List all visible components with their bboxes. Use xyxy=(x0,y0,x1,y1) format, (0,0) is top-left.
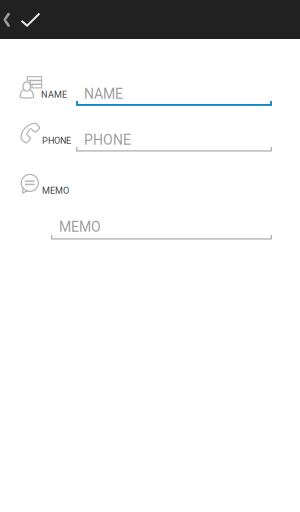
staticText: PHONE xyxy=(84,132,131,148)
staticText: MEMO xyxy=(59,219,101,235)
button[interactable]: NAME xyxy=(76,84,273,108)
staticText: MEMO xyxy=(42,185,69,196)
button[interactable]: Back xyxy=(1,12,13,28)
staticText: NAME xyxy=(84,86,123,102)
button[interactable]: Save xyxy=(20,12,41,27)
staticText: NAME xyxy=(41,89,67,100)
button[interactable]: PHONE xyxy=(76,130,273,154)
button[interactable]: MEMO xyxy=(51,217,273,241)
staticText: PHONE xyxy=(42,135,71,146)
